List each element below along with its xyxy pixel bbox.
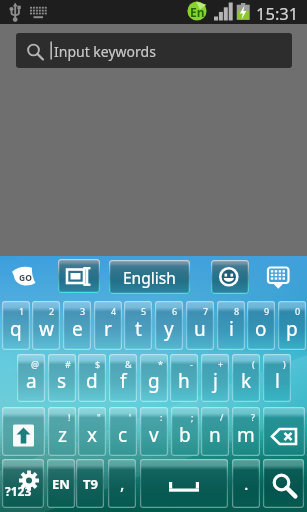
staticText: 7 [203,305,209,317]
button[interactable]: # [48,354,76,402]
staticText: x [87,422,98,448]
button[interactable]: " [78,407,106,456]
staticText: @ [31,358,40,370]
button[interactable]: . [232,459,260,508]
staticText: h [178,368,190,394]
staticText: j [213,368,218,394]
staticText: - [190,358,193,370]
staticText: t [135,316,142,342]
button[interactable]: 6 [155,301,183,350]
button[interactable]: 9 [247,301,275,350]
staticText: EN [52,475,70,493]
button[interactable]: 5 [124,301,152,350]
staticText: r [104,316,112,342]
staticText: 0 [295,305,301,317]
staticText: s [57,368,67,394]
button[interactable]: $ [78,354,106,402]
button[interactable]: 1 [2,301,30,350]
button[interactable]: Switch input mode [58,259,100,293]
staticText: ' [129,411,132,423]
staticText: d [86,368,98,394]
button[interactable]: 3 [63,301,91,350]
staticText: i [229,316,234,342]
button[interactable]: ) [263,354,291,402]
staticText: k [241,368,252,394]
staticText: o [255,316,267,342]
button[interactable]: : [140,407,168,456]
button[interactable]: ' [109,407,137,456]
staticText: n [209,422,221,448]
staticText: & [125,358,132,370]
staticText: ( [252,358,255,370]
staticText: c [118,422,128,448]
staticText: ?123 [5,483,32,499]
button[interactable]: & [109,354,137,402]
button[interactable]: Shift [2,407,45,456]
button[interactable]: + [201,354,229,402]
button[interactable]: GO Keyboard [10,266,38,288]
staticText: / [220,411,224,423]
staticText: Input keywords [54,42,156,61]
button[interactable]: ; [171,407,199,456]
staticText: " [97,411,101,423]
staticText: 4 [111,305,117,317]
staticText: 2 [49,305,55,317]
button[interactable]: Emoji [211,260,249,294]
staticText: f [120,368,127,394]
staticText: En [190,4,205,20]
staticText: ; [191,411,194,423]
staticText: $ [95,358,101,370]
button[interactable]: / [201,407,229,456]
button[interactable]: ? [232,407,260,456]
staticText: : [160,411,163,423]
button[interactable]: Hide keyboard [266,266,294,290]
staticText: p [286,316,298,342]
staticText: e [72,316,83,342]
button[interactable]: Search [263,459,304,508]
button[interactable]: 0 [278,301,306,350]
button[interactable]: English [109,260,190,294]
button[interactable]: Backspace [263,407,305,456]
staticText: English [123,267,176,288]
button[interactable]: Input keywords [16,33,292,68]
staticText: # [65,358,71,370]
staticText: z [58,422,67,448]
button[interactable]: 7 [186,301,214,350]
staticText: q [10,316,22,342]
staticText: 15:31 [256,2,299,24]
staticText: 1 [19,305,25,317]
staticText: l [275,368,280,394]
staticText: y [164,316,174,342]
staticText: 8 [234,305,240,317]
staticText: . [244,472,249,495]
staticText: g [148,368,160,394]
staticText: 6 [172,305,178,317]
button[interactable]: Symbols [2,459,44,508]
staticText: ? [251,411,255,423]
staticText: 5 [141,305,147,317]
button[interactable]: @ [17,354,45,402]
staticText: v [149,422,159,448]
button[interactable]: , [108,459,136,508]
staticText: 9 [264,305,270,317]
staticText: , [120,472,125,495]
button[interactable]: 2 [32,301,60,350]
button[interactable]: Space [140,459,228,508]
staticText: w [39,316,54,342]
button[interactable]: T9 [76,459,104,508]
staticText: ) [283,358,286,370]
staticText: + [218,358,224,370]
button[interactable]: - [170,354,198,402]
staticText: a [26,368,37,394]
button[interactable]: EN [47,459,75,508]
staticText: * [158,358,163,370]
staticText: m [237,422,255,448]
button[interactable]: * [140,354,168,402]
staticText: ! [68,411,71,423]
staticText: b [179,422,191,448]
staticText: 3 [80,305,86,317]
button[interactable]: 4 [94,301,122,350]
button[interactable]: ( [232,354,260,402]
button[interactable]: 8 [217,301,245,350]
button[interactable]: ! [48,407,76,456]
